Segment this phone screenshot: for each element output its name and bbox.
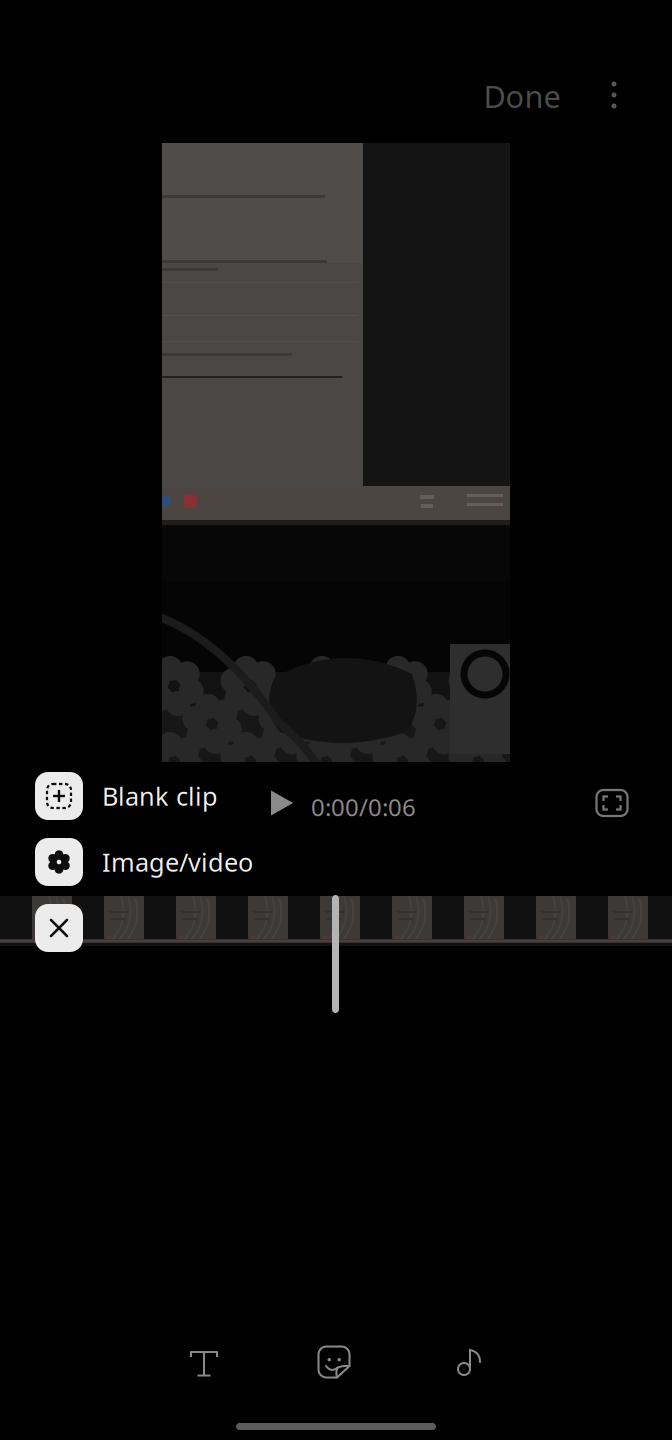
staticText: Blank clip — [102, 779, 218, 813]
button[interactable]: Play — [260, 781, 304, 825]
button[interactable]: Text — [168, 1332, 240, 1392]
button[interactable]: Blank clip — [35, 772, 218, 820]
button[interactable]: Fit to screen — [588, 779, 636, 827]
button[interactable]: Done — [473, 68, 571, 124]
staticText: 0:00/0:06 — [311, 791, 416, 823]
button[interactable]: Music — [434, 1332, 506, 1392]
button[interactable]: Close — [35, 904, 83, 952]
button[interactable]: Image/video — [35, 838, 253, 886]
button[interactable]: Stickers — [298, 1332, 370, 1392]
button[interactable]: More options — [594, 73, 634, 117]
staticText: Image/video — [102, 845, 253, 879]
staticText: Done — [483, 76, 560, 116]
